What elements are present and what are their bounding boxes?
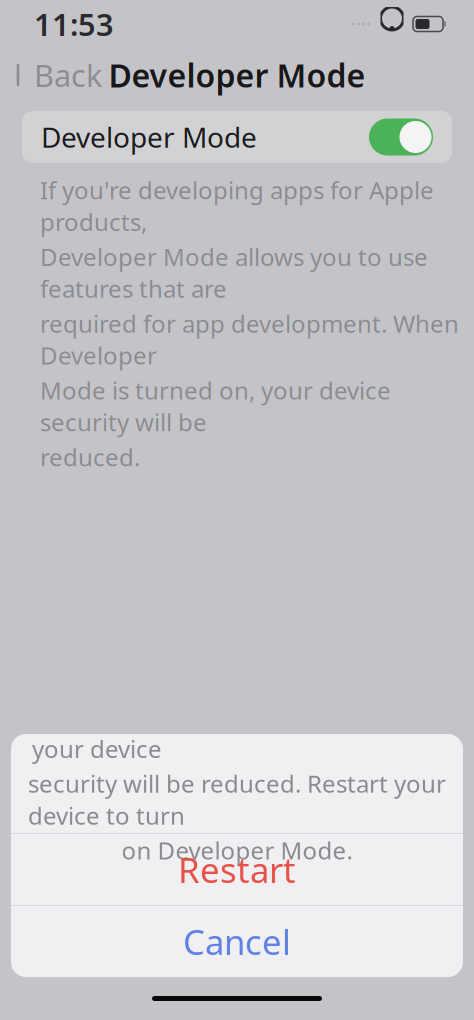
button[interactable]: Cancel [11, 906, 463, 977]
staticText: 11:53 [34, 4, 114, 44]
button[interactable]: Developer Mode [22, 111, 452, 163]
staticText: Back [34, 55, 102, 95]
staticText: security will be reduced. Restart your d… [28, 768, 446, 831]
staticText: Restart [178, 846, 296, 892]
staticText: When Developer Mode is turned on, your d… [32, 701, 442, 764]
staticText: Cancel [183, 918, 291, 964]
staticText: Mode is turned on, your device security … [40, 374, 391, 438]
staticText: Developer Mode allows you to use feature… [40, 241, 428, 304]
staticText: reduced. [40, 441, 140, 473]
staticText: on Developer Mode. [121, 834, 352, 866]
button[interactable]: Restart [11, 834, 463, 905]
staticText: If you're developing apps for Apple prod… [40, 174, 434, 238]
staticText: Developer Mode [108, 54, 365, 96]
button[interactable]: Back [0, 47, 102, 103]
staticText: Developer Mode [41, 118, 257, 156]
staticText: required for app development. When Devel… [40, 307, 459, 371]
